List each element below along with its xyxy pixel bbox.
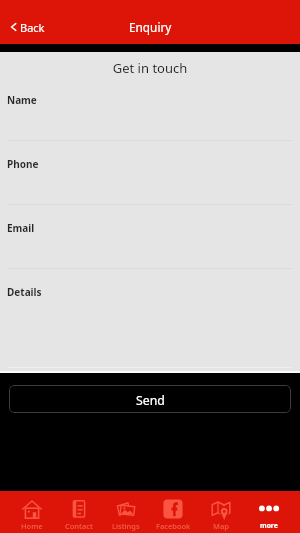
button[interactable]: Details (0, 285, 300, 385)
staticText: Facebook (156, 521, 191, 531)
staticText: Send (136, 392, 165, 409)
button[interactable]: Back (11, 15, 45, 39)
staticText: more (260, 521, 278, 530)
staticText: Get in touch (0, 59, 300, 77)
staticText: Email (7, 221, 35, 235)
button[interactable]: more (245, 491, 293, 533)
button[interactable]: Facebook (149, 491, 197, 533)
staticText: Listings (112, 521, 140, 531)
button[interactable]: Home (8, 491, 55, 533)
button[interactable]: Contact (55, 491, 102, 533)
staticText: Details (7, 285, 42, 299)
staticText: Enquiry (129, 19, 172, 35)
staticText: Name (7, 93, 37, 107)
staticText: Back (20, 20, 45, 35)
staticText: Phone (7, 157, 39, 171)
button[interactable]: Map (197, 491, 245, 533)
button[interactable]: Send (9, 385, 291, 413)
staticText: Home (21, 521, 43, 531)
button[interactable]: Listings (102, 491, 149, 533)
staticText: Map (213, 521, 229, 531)
button[interactable]: Phone (0, 157, 300, 221)
button[interactable]: Email (0, 221, 300, 285)
staticText: Contact (65, 521, 93, 531)
button[interactable]: Name (0, 93, 300, 157)
